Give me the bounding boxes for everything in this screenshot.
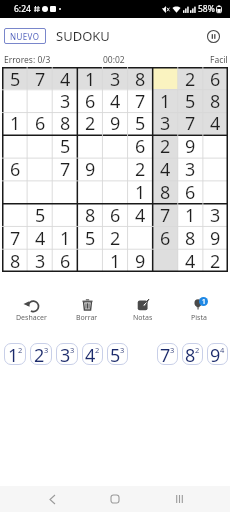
button[interactable] (28, 89, 53, 111)
button[interactable] (128, 226, 153, 249)
button[interactable]: 9 (178, 134, 203, 157)
button[interactable]: 8 (53, 111, 78, 134)
button[interactable]: 6 (128, 134, 153, 157)
button[interactable]: 8 (2, 249, 28, 272)
button[interactable]: 7 (53, 157, 78, 180)
button[interactable]: 6 (203, 67, 228, 89)
button[interactable]: 3 (153, 111, 178, 134)
button[interactable]: 2 (78, 111, 103, 134)
button[interactable]: 8 (178, 226, 203, 249)
button[interactable]: 4 (82, 343, 103, 365)
button[interactable]: 7 (2, 226, 28, 249)
button[interactable] (53, 203, 78, 226)
button[interactable]: 9 (203, 226, 228, 249)
staticText: 7 (135, 89, 146, 111)
button[interactable]: 7 (157, 343, 178, 365)
button[interactable] (78, 180, 103, 203)
button[interactable] (78, 134, 103, 157)
button[interactable]: Recent apps (167, 487, 191, 511)
button[interactable] (203, 157, 228, 180)
button[interactable]: 2 (178, 67, 203, 89)
button[interactable]: 4 (203, 111, 228, 134)
button[interactable]: Notas (118, 297, 168, 323)
button[interactable] (2, 89, 28, 111)
button[interactable]: 7 (128, 89, 153, 111)
button[interactable]: 8 (182, 343, 203, 365)
button[interactable]: 3 (56, 343, 78, 365)
button[interactable] (28, 134, 53, 157)
button[interactable]: 1 (2, 111, 28, 134)
button[interactable]: 3 (28, 249, 53, 272)
button[interactable] (203, 134, 228, 157)
button[interactable] (53, 180, 78, 203)
button[interactable]: 5 (107, 343, 128, 365)
button[interactable]: 2 (30, 343, 52, 365)
button[interactable]: 3 (178, 157, 203, 180)
button[interactable]: 6 (178, 180, 203, 203)
button[interactable]: 1 (128, 180, 153, 203)
button[interactable] (2, 180, 28, 203)
button[interactable]: Pause (202, 25, 224, 47)
button[interactable] (153, 67, 178, 89)
button[interactable]: 4 (103, 89, 128, 111)
button[interactable]: 5 (28, 203, 53, 226)
button[interactable]: 6 (78, 89, 103, 111)
button[interactable]: 3 (53, 89, 78, 111)
button[interactable]: 1 (103, 249, 128, 272)
button[interactable]: 8 (203, 89, 228, 111)
button[interactable]: 2 (128, 157, 153, 180)
button[interactable]: 9 (78, 157, 103, 180)
button[interactable]: 6 (103, 203, 128, 226)
button[interactable]: 1 (178, 203, 203, 226)
button[interactable]: 8 (78, 203, 103, 226)
button[interactable]: 5 (2, 67, 28, 89)
button[interactable]: 2 (203, 249, 228, 272)
button[interactable]: 5 (53, 134, 78, 157)
button[interactable]: 9 (128, 249, 153, 272)
button[interactable]: 9 (103, 111, 128, 134)
button[interactable]: 8 (128, 67, 153, 89)
button[interactable]: 5 (128, 111, 153, 134)
button[interactable] (203, 180, 228, 203)
button[interactable]: 6 (53, 249, 78, 272)
button[interactable]: 5 (178, 89, 203, 111)
button[interactable]: Deshacer (6, 297, 56, 323)
button[interactable]: 4 (128, 203, 153, 226)
button[interactable] (28, 157, 53, 180)
button[interactable]: 6 (2, 157, 28, 180)
button[interactable]: 6 (28, 111, 53, 134)
button[interactable]: 4 (53, 67, 78, 89)
button[interactable]: 1 (53, 226, 78, 249)
button[interactable]: 1 (78, 67, 103, 89)
button[interactable] (103, 180, 128, 203)
button[interactable]: 3 (203, 203, 228, 226)
button[interactable]: 9 (207, 343, 228, 365)
button[interactable] (78, 249, 103, 272)
button[interactable] (103, 134, 128, 157)
button[interactable]: 3 (103, 67, 128, 89)
button[interactable]: Back (40, 487, 64, 511)
button[interactable] (28, 180, 53, 203)
button[interactable] (153, 249, 178, 272)
button[interactable]: 7 (178, 111, 203, 134)
button[interactable] (103, 157, 128, 180)
button[interactable]: 8 (153, 180, 178, 203)
button[interactable]: 7 (153, 203, 178, 226)
button[interactable]: 2 (103, 226, 128, 249)
button[interactable]: 4 (153, 157, 178, 180)
button[interactable]: 4 (178, 249, 203, 272)
staticText: Facil (210, 54, 228, 64)
button[interactable]: 6 (153, 226, 178, 249)
button[interactable]: Borrar (62, 297, 112, 323)
button[interactable]: 1 (153, 89, 178, 111)
button[interactable]: Home (103, 487, 127, 511)
button[interactable]: 2 (153, 134, 178, 157)
button[interactable] (2, 203, 28, 226)
button[interactable]: 1 (174, 297, 224, 323)
button[interactable]: 4 (28, 226, 53, 249)
button[interactable]: 7 (28, 67, 53, 89)
button[interactable] (2, 134, 28, 157)
button[interactable]: NUEVO (4, 28, 46, 44)
button[interactable]: 1 (4, 343, 26, 365)
button[interactable]: 5 (78, 226, 103, 249)
